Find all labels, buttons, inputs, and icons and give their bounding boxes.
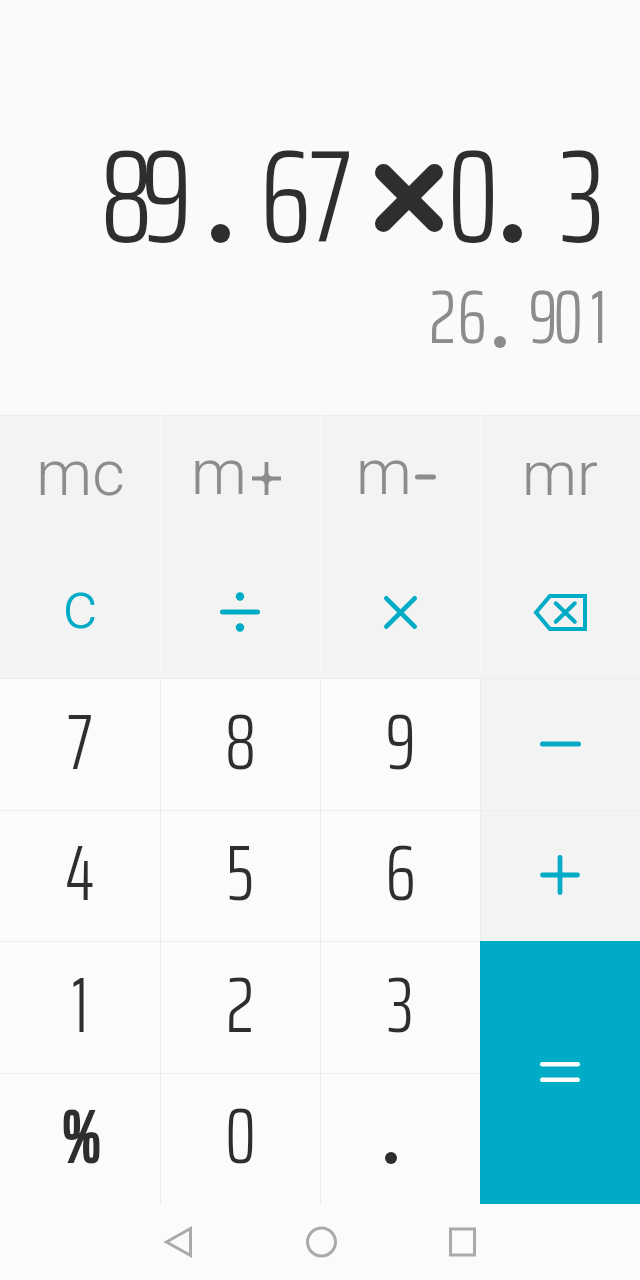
staticText: 5 <box>226 811 254 920</box>
staticText: mc <box>36 437 125 511</box>
staticText: 1 <box>71 943 89 1052</box>
staticText: 9 <box>528 258 558 363</box>
button[interactable]: 9 <box>320 678 480 810</box>
button[interactable]: 1 <box>0 941 160 1073</box>
button[interactable]: 5 <box>160 810 320 942</box>
staticText: 3 <box>560 93 605 276</box>
staticText: 0 <box>225 1074 256 1183</box>
staticText: mr <box>522 437 598 510</box>
staticText: 8 <box>225 680 256 789</box>
button[interactable]: Back <box>123 1204 233 1280</box>
button[interactable]: m- <box>320 415 480 547</box>
button[interactable]: mr <box>480 415 640 547</box>
button[interactable]: Recent apps <box>407 1204 517 1280</box>
staticText: 6 <box>260 93 311 276</box>
staticText: c <box>63 567 97 644</box>
staticText: 2 <box>226 943 254 1052</box>
button[interactable]: 6 <box>320 810 480 942</box>
staticText: 3 <box>387 943 414 1052</box>
button[interactable]: 3 <box>320 941 480 1073</box>
staticText: 2 <box>429 258 456 363</box>
button[interactable]: plus <box>480 810 640 942</box>
staticText: 6 <box>385 811 416 920</box>
button[interactable]: divide <box>160 547 320 679</box>
staticText: 7 <box>67 680 93 789</box>
button[interactable]: minus <box>480 678 640 810</box>
button[interactable]: 8 <box>160 678 320 810</box>
staticText: 0 <box>553 258 583 363</box>
button[interactable]: 0 <box>160 1073 320 1205</box>
staticText: 8 <box>100 93 153 276</box>
button[interactable]: 4 <box>0 810 160 942</box>
button[interactable]: c <box>0 547 160 679</box>
staticText: 9 <box>141 93 192 276</box>
staticText: 6 <box>457 258 487 363</box>
staticText: m <box>191 436 247 510</box>
button[interactable]: Home <box>266 1204 376 1280</box>
button[interactable]: m+ <box>160 415 320 547</box>
button[interactable]: % <box>0 1073 160 1205</box>
button[interactable]: 7 <box>0 678 160 810</box>
button[interactable]: mc <box>0 415 160 547</box>
staticText: 9 <box>385 680 416 789</box>
button[interactable]: backspace <box>480 547 640 679</box>
staticText: 7 <box>309 93 352 276</box>
staticText: 0 <box>447 93 499 276</box>
button[interactable]: equals <box>480 941 640 1204</box>
button[interactable]: multiply <box>320 547 480 679</box>
staticText: 1 <box>590 258 607 363</box>
button[interactable]: 2 <box>160 941 320 1073</box>
staticText: m <box>356 436 412 510</box>
staticText: 4 <box>65 811 95 920</box>
staticText: % <box>60 1079 100 1183</box>
button[interactable]: . <box>320 1073 480 1205</box>
